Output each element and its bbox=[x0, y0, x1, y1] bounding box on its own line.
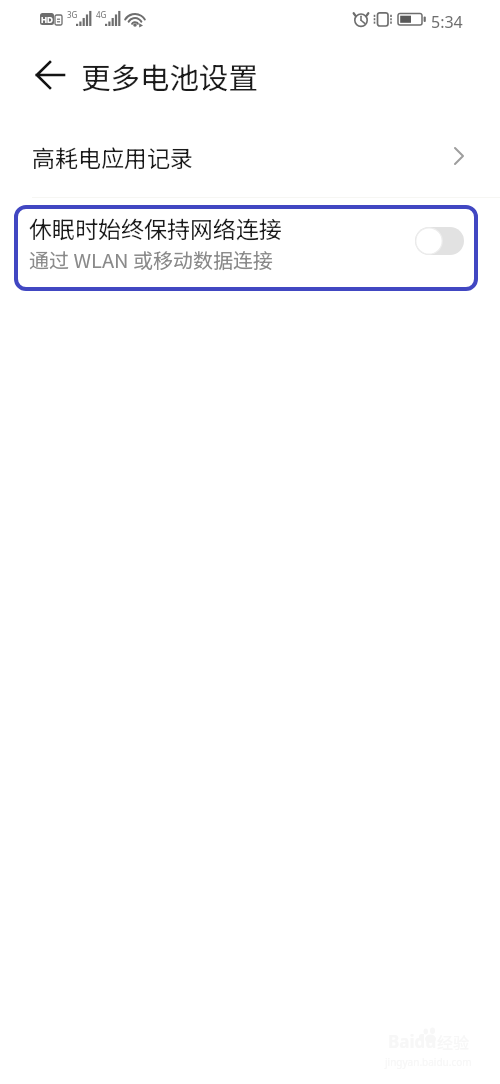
staticText: 5:34 bbox=[431, 11, 463, 33]
button[interactable]: 休眠时始终保持网络连接 bbox=[14, 205, 478, 291]
staticText: 经验 bbox=[437, 1030, 470, 1053]
button[interactable]: 高耗电应用记录 bbox=[0, 128, 500, 184]
staticText: 4G bbox=[96, 9, 107, 20]
staticText: 更多电池设置 bbox=[81, 55, 259, 98]
staticText: 通过 WLAN 或移动数据连接 bbox=[29, 245, 274, 274]
button[interactable]: Toggle: keep network connected while sle… bbox=[415, 227, 464, 255]
staticText: 休眠时始终保持网络连接 bbox=[29, 211, 282, 244]
staticText: HD bbox=[41, 14, 53, 25]
staticText: 3G bbox=[67, 9, 78, 20]
staticText: Baidu bbox=[388, 1030, 437, 1053]
staticText: 高耗电应用记录 bbox=[32, 140, 193, 173]
button[interactable]: Back bbox=[27, 52, 73, 98]
